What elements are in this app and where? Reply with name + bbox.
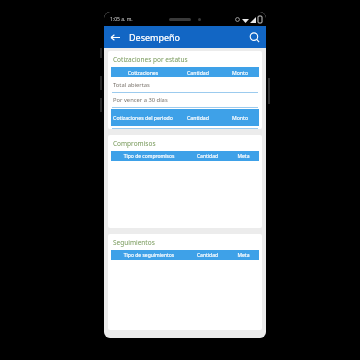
staticText: Cantidad bbox=[175, 114, 221, 121]
staticText: Monto bbox=[221, 114, 259, 121]
staticText: Cotizaciones del periodo bbox=[111, 114, 175, 121]
staticText: Meta bbox=[228, 153, 259, 160]
button[interactable]: Seguimientos bbox=[108, 234, 262, 330]
button[interactable]: Tipo de compromisos bbox=[111, 151, 259, 161]
staticText: Tipo de compromisos bbox=[111, 153, 187, 160]
button[interactable]: Search bbox=[246, 29, 262, 45]
staticText: 1:05 a. m. bbox=[110, 16, 133, 23]
button[interactable]: Cotizaciones por estatus bbox=[108, 51, 262, 129]
button[interactable]: Tipo de seguimientos bbox=[111, 250, 259, 260]
button[interactable]: Back bbox=[107, 29, 123, 45]
staticText: Total abiertas bbox=[113, 81, 150, 89]
staticText: Por vencer a 30 días bbox=[113, 96, 168, 104]
staticText: Desempeño bbox=[129, 31, 181, 43]
staticText: Seguimientos bbox=[113, 238, 155, 247]
staticText: Meta bbox=[228, 252, 259, 259]
staticText: Monto bbox=[221, 69, 259, 76]
staticText: Cantidad bbox=[175, 69, 221, 76]
staticText: Cantidad bbox=[187, 153, 228, 160]
staticText: Cotizaciones por estatus bbox=[113, 55, 188, 64]
button[interactable]: Cotizaciones bbox=[111, 67, 259, 77]
staticText: Compromisos bbox=[113, 139, 156, 148]
staticText: Tipo de seguimientos bbox=[111, 252, 187, 259]
button[interactable]: Compromisos bbox=[108, 135, 262, 228]
button[interactable]: Cotizaciones del periodo bbox=[111, 109, 259, 126]
staticText: Cotizaciones bbox=[111, 69, 175, 76]
staticText: Cantidad bbox=[187, 252, 228, 259]
